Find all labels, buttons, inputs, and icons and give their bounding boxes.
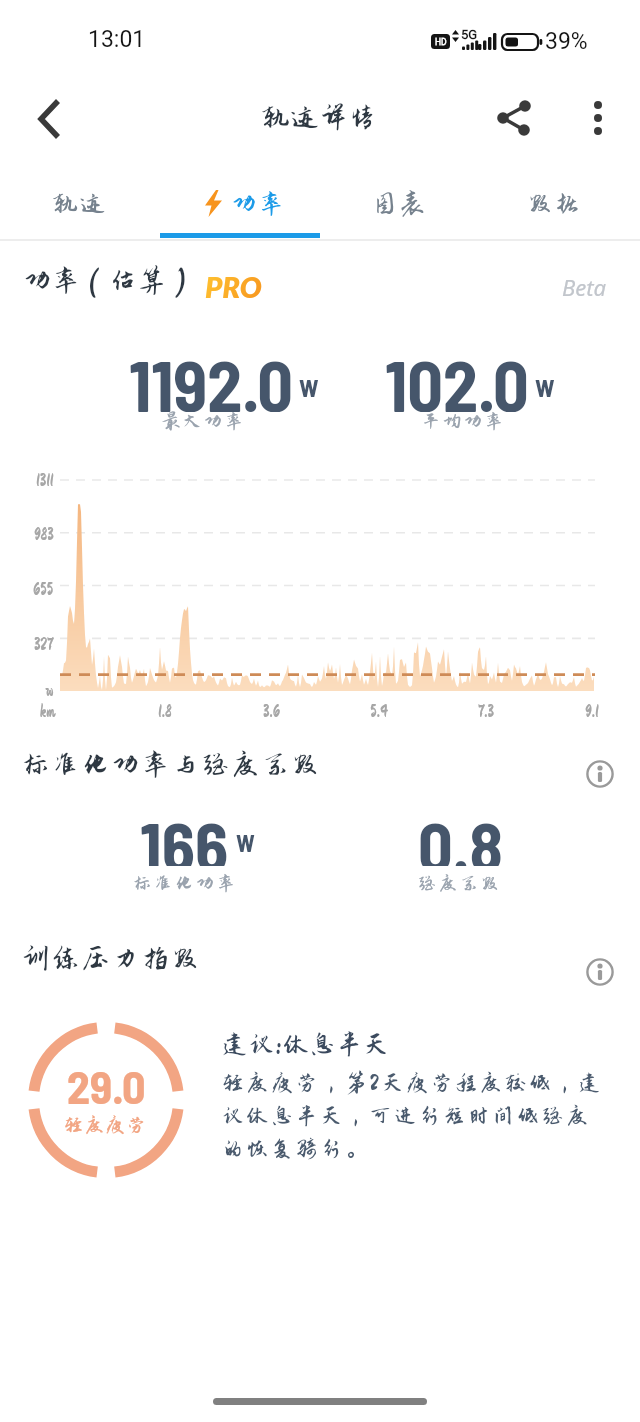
button[interactable]: 功率: [160, 172, 320, 234]
staticText: 平均功率: [422, 411, 506, 431]
staticText: w: [46, 681, 54, 699]
staticText: 9.1: [585, 702, 599, 720]
button[interactable]: [486, 90, 542, 146]
staticText: 1192.0: [129, 342, 293, 412]
staticText: 5.4: [370, 702, 388, 720]
staticText: 327: [34, 635, 54, 653]
staticText: 标准化功率: [133, 873, 238, 893]
staticText: 轨迹详情: [262, 103, 378, 133]
staticText: 功率: [232, 190, 287, 217]
staticText: 1.8: [158, 702, 172, 720]
staticText: 655: [33, 580, 54, 598]
staticText: 7.3: [478, 702, 494, 720]
staticText: 训练压力指数: [22, 944, 202, 974]
button[interactable]: [20, 88, 80, 148]
staticText: W: [236, 828, 255, 857]
staticText: 29.0: [67, 1058, 146, 1108]
staticText: 3.6: [263, 702, 281, 720]
staticText: 166: [140, 804, 229, 866]
staticText: W: [299, 372, 319, 402]
staticText: 13:01: [88, 26, 146, 53]
staticText: 102.0: [385, 342, 529, 412]
staticText: 0.8: [418, 804, 503, 866]
staticText: W: [535, 372, 555, 402]
staticText: km: [40, 702, 56, 720]
staticText: 标准化功率与强度系数: [22, 750, 322, 780]
staticText: 图表: [373, 190, 428, 217]
staticText: 轨迹: [53, 190, 108, 217]
staticText: 1311: [36, 471, 54, 489]
staticText: 数据: [528, 190, 583, 217]
button[interactable]: [578, 950, 622, 994]
button[interactable]: 数据: [480, 172, 640, 234]
staticText: 功率（估算）: [24, 266, 195, 296]
staticText: 最大功率: [162, 411, 246, 431]
staticText: 5G: [461, 27, 478, 42]
button[interactable]: 图表: [320, 172, 480, 234]
staticText: 建议:休息半天: [222, 1030, 391, 1058]
staticText: Beta: [562, 272, 606, 302]
staticText: 轻度疲劳，第2天疲劳程度较低，建 议休息半天，可进行短时间低强度 的恢复骑行。: [222, 1071, 640, 1161]
staticText: 强度系数: [418, 873, 502, 893]
button[interactable]: [578, 752, 622, 796]
staticText: HD: [435, 37, 447, 47]
button[interactable]: 轨迹: [0, 172, 160, 234]
staticText: 983: [34, 525, 54, 543]
button[interactable]: [572, 90, 624, 146]
staticText: 轻度疲劳: [64, 1115, 148, 1136]
staticText: PRO: [205, 269, 262, 304]
staticText: 39%: [545, 28, 588, 55]
